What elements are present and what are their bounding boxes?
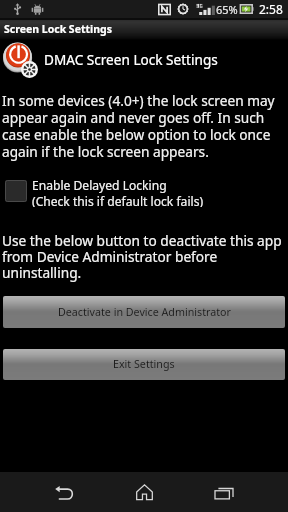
staticText: Exit Settings	[113, 357, 175, 372]
staticText: Deactivate in Device Administrator	[58, 305, 231, 320]
button[interactable]: Exit Settings	[3, 349, 285, 380]
staticText: (Check this if default lock fails)	[32, 193, 204, 207]
staticText: Screen Lock Settings	[4, 22, 112, 36]
staticText: In some devices (4.0+) the lock screen m…	[2, 91, 275, 161]
staticText: 65%	[216, 2, 238, 17]
staticText: DMAC Screen Lock Settings	[44, 50, 218, 69]
button[interactable]: Enable Delayed Locking	[0, 177, 288, 207]
button[interactable]: Deactivate in Device Administrator	[3, 296, 285, 328]
button[interactable]: Back	[42, 472, 86, 512]
staticText: Use the below button to deactivate this …	[2, 231, 282, 282]
button[interactable]: Home	[122, 472, 166, 512]
staticText: 2:58	[259, 1, 283, 17]
button[interactable]: Recent apps	[202, 472, 246, 512]
staticText: Enable Delayed Locking	[32, 177, 167, 193]
